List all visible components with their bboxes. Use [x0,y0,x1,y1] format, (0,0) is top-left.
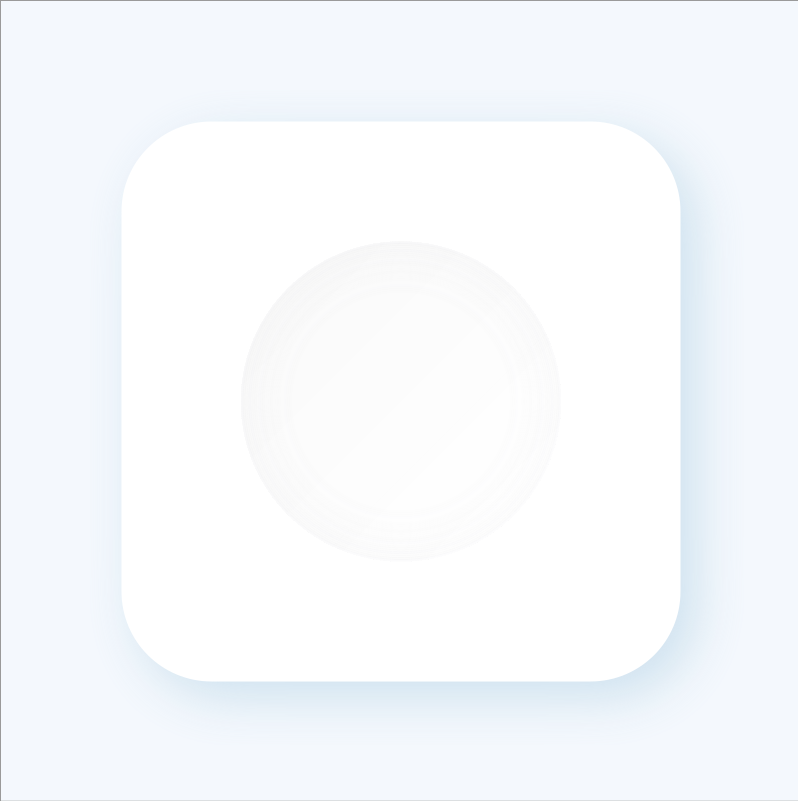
button[interactable]: Soft key [121,121,680,681]
